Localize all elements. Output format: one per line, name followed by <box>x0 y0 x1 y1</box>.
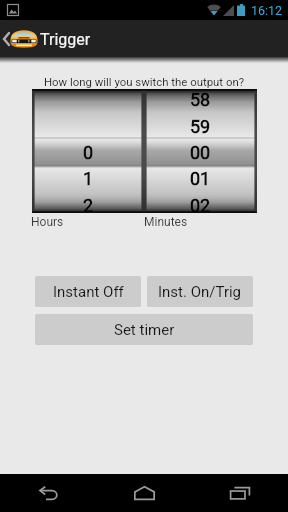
staticText: 0 <box>83 142 94 163</box>
button[interactable]: Recent apps <box>192 474 288 512</box>
staticText: Set timer <box>114 321 175 339</box>
staticText: Instant Off <box>53 283 124 301</box>
staticText: Hours <box>31 215 64 229</box>
staticText: Minutes <box>144 215 188 229</box>
staticText: 1 <box>83 168 94 189</box>
button[interactable]: Back <box>0 474 96 512</box>
button[interactable]: Inst. On/Trig <box>147 276 253 307</box>
staticText: 58 <box>190 89 211 110</box>
staticText: 01 <box>190 168 211 189</box>
staticText: 59 <box>190 116 211 137</box>
staticText: Trigger <box>40 30 91 49</box>
staticText: Inst. On/Trig <box>158 283 242 301</box>
button[interactable]: Set timer <box>35 314 253 345</box>
staticText: How long will you switch the output on? <box>0 75 288 88</box>
staticText: 16:12 <box>251 3 283 18</box>
staticText: 02 <box>190 195 211 216</box>
button[interactable]: Home <box>96 474 192 512</box>
staticText: 2 <box>83 195 94 216</box>
button[interactable]: Instant Off <box>35 276 141 307</box>
staticText: 00 <box>190 142 211 163</box>
button[interactable]: Navigate up <box>0 20 40 57</box>
